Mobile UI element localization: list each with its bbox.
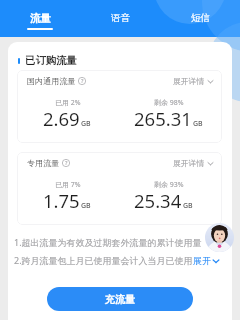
button[interactable]: 展开详情 — [173, 158, 214, 168]
staticText: 2.69 — [43, 106, 80, 131]
staticText: 专用流量 — [27, 158, 60, 168]
staticText: 展开 — [193, 255, 211, 266]
staticText: 充流量 — [105, 293, 135, 306]
button[interactable]: 在线客服 — [205, 223, 234, 252]
button[interactable]: 国内通用流量 — [17, 70, 222, 143]
staticText: 已用 7% — [55, 180, 81, 190]
staticText: 流量 — [30, 12, 51, 25]
other: 说明 — [78, 77, 86, 85]
staticText: 语音 — [111, 12, 130, 24]
button[interactable]: 流量 — [22, 12, 58, 34]
staticText: 2.跨月流量包上月已使用量会计入当月已使用 — [14, 254, 193, 266]
button[interactable]: 已订购流量 — [18, 54, 77, 67]
staticText: 剩余 98% — [154, 98, 184, 108]
staticText: 展开详情 — [173, 76, 205, 86]
staticText: ? — [65, 159, 68, 167]
button[interactable]: 展开详情 — [173, 76, 214, 86]
staticText: 国内通用流量 — [27, 76, 76, 86]
staticText: 剩余 93% — [154, 180, 184, 190]
staticText: 展开详情 — [173, 158, 205, 168]
staticText: GB — [81, 201, 91, 211]
staticText: 265.31 — [134, 106, 192, 131]
staticText: GB — [193, 119, 203, 129]
button[interactable]: 语音 — [102, 12, 138, 34]
staticText: 短信 — [191, 12, 210, 24]
button[interactable]: 短信 — [182, 12, 218, 34]
staticText: 1.75 — [43, 188, 80, 213]
staticText: 已订购流量 — [25, 54, 77, 67]
staticText: GB — [183, 201, 193, 211]
other: 说明 — [62, 159, 70, 167]
staticText: 1.超出流量为有效及过期套外流量的累计使用量 — [14, 236, 202, 248]
staticText: 已用 2% — [55, 98, 81, 108]
staticText: 25.34 — [134, 188, 182, 213]
staticText: GB — [81, 119, 91, 129]
button[interactable]: 充流量 — [47, 287, 193, 311]
button[interactable]: 专用流量 — [17, 152, 222, 225]
staticText: ? — [81, 77, 84, 85]
button[interactable]: 展开 — [193, 255, 220, 266]
